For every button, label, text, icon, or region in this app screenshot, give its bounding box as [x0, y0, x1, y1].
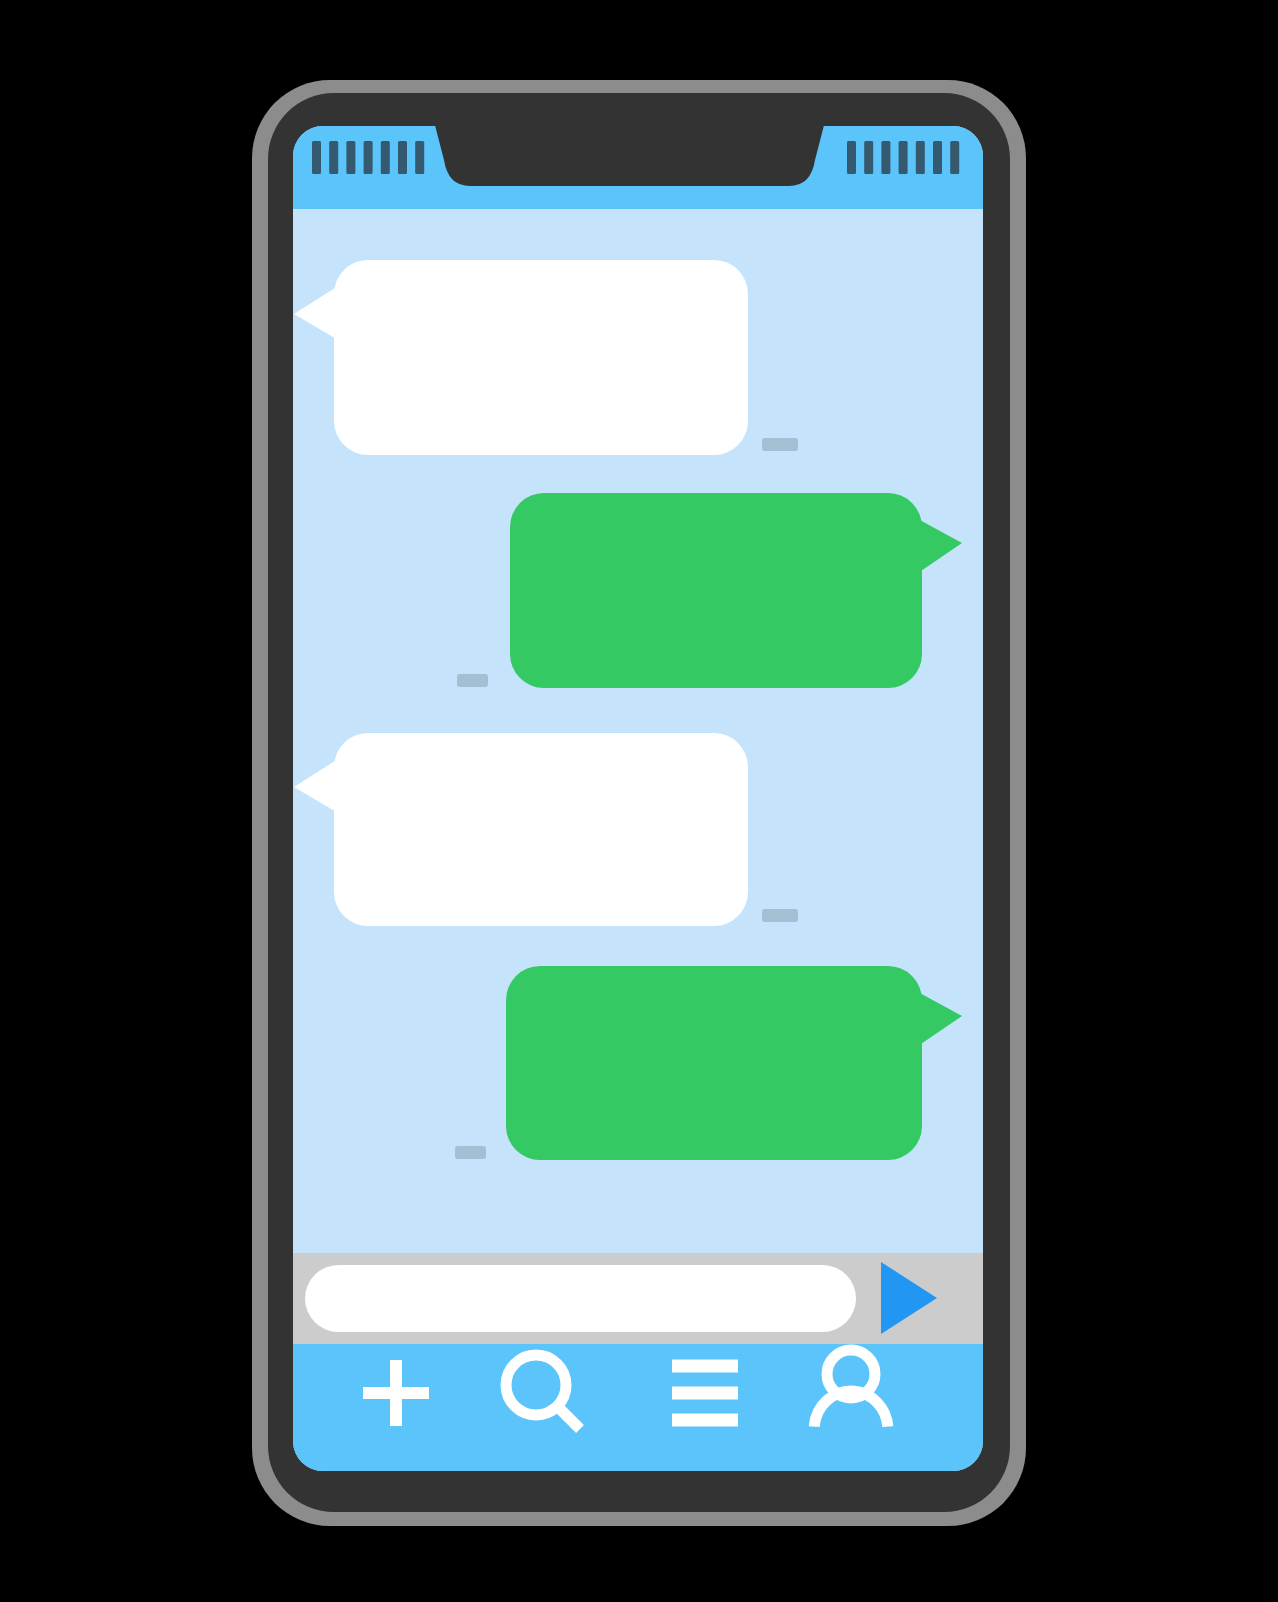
button[interactable]: Received message	[334, 733, 748, 926]
button[interactable]: Received message	[334, 260, 748, 455]
button[interactable]: Menu	[638, 1344, 811, 1471]
button[interactable]: Search	[466, 1344, 639, 1471]
button[interactable]: Add	[293, 1344, 466, 1471]
button[interactable]: Sent message	[510, 493, 922, 688]
button[interactable]: Profile	[811, 1344, 984, 1471]
button[interactable]: Sent message	[506, 966, 922, 1160]
button[interactable]: Send	[866, 1254, 954, 1344]
button[interactable]: Message input field	[305, 1265, 856, 1332]
